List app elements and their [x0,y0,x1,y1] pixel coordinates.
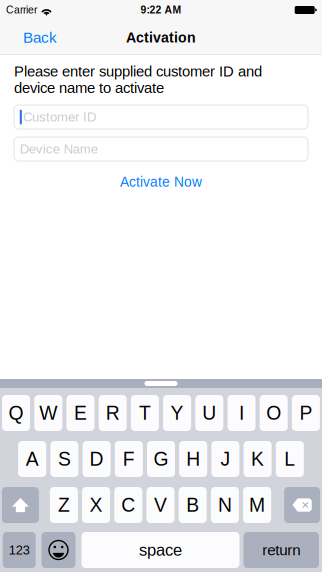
staticText: P [299,402,312,424]
button[interactable]: O [260,395,288,431]
button[interactable]: S [50,441,78,477]
button[interactable]: T [131,395,159,431]
staticText: M [249,494,265,516]
staticText: Y [171,402,184,424]
button[interactable]: W [34,395,62,431]
staticText: D [90,448,104,470]
button[interactable]: C [114,487,142,523]
button[interactable]: J [211,441,239,477]
staticText: B [186,494,199,516]
button[interactable]: G [147,441,175,477]
button[interactable]: Device Name [14,137,308,161]
button[interactable]: L [276,441,304,477]
button[interactable]: return [243,532,319,568]
button[interactable]: space [81,532,239,568]
staticText: 123 [9,543,30,557]
button[interactable]: D [83,441,111,477]
staticText: G [153,448,168,470]
button[interactable]: Customer ID [14,105,308,129]
staticText: R [106,402,120,424]
staticText: A [26,448,39,470]
button[interactable]: B [179,487,207,523]
staticText: E [74,402,87,424]
button[interactable]: V [146,487,174,523]
staticText: Q [9,402,24,424]
staticText: H [186,448,200,470]
staticText: N [218,494,232,516]
staticText: O [266,402,281,424]
staticText: 9:22 AM [140,4,181,16]
staticText: T [139,402,151,424]
button[interactable]: R [99,395,127,431]
button[interactable]: F [115,441,143,477]
staticText: Device Name [20,142,98,156]
button[interactable]: N [211,487,239,523]
staticText: I [239,402,244,424]
button[interactable]: Delete [284,487,320,523]
button[interactable]: U [195,395,223,431]
button[interactable]: E [66,395,94,431]
button[interactable]: X [82,487,110,523]
button[interactable]: H [179,441,207,477]
staticText: Activation [126,30,196,45]
staticText: Back [23,29,57,46]
button[interactable]: 123 [3,532,36,568]
button[interactable]: Back [0,20,71,55]
staticText: W [39,402,57,424]
button[interactable]: Shift [2,487,39,523]
staticText: space [139,541,182,559]
staticText: J [220,448,230,470]
button[interactable]: Z [50,487,78,523]
staticText: F [123,448,135,470]
staticText: X [90,494,103,516]
staticText: return [262,541,300,558]
staticText: U [202,402,216,424]
staticText: Carrier [6,4,37,16]
staticText: Customer ID [23,110,96,124]
staticText: S [58,448,71,470]
button[interactable]: Q [2,395,30,431]
staticText: L [284,448,295,470]
staticText: C [121,494,135,516]
button[interactable]: K [244,441,272,477]
button[interactable]: I [227,395,255,431]
staticText: Activate Now [120,174,202,190]
button[interactable]: M [243,487,271,523]
button[interactable]: P [292,395,320,431]
button[interactable]: A [18,441,46,477]
button[interactable]: Emoji [41,532,75,568]
staticText: V [154,494,167,516]
staticText: Please enter supplied customer ID and [14,63,262,79]
staticText: Z [58,494,70,516]
staticText: device name to activate [14,79,164,96]
button[interactable]: Activate Now [14,174,308,190]
button[interactable]: Y [163,395,191,431]
staticText: K [251,448,264,470]
